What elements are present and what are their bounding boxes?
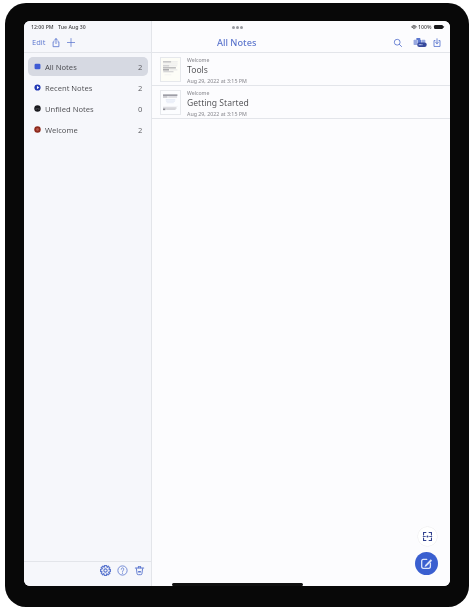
- button[interactable]: Scan document: [417, 526, 438, 547]
- button[interactable]: Search: [393, 38, 403, 48]
- button[interactable]: New folder: [66, 37, 76, 48]
- button[interactable]: Edit: [31, 37, 47, 47]
- staticText: 100%: [418, 23, 432, 30]
- button[interactable]: Share: [51, 37, 61, 48]
- button[interactable]: Welcome: [152, 53, 450, 85]
- button[interactable]: New note: [415, 552, 438, 575]
- staticText: Aug 29, 2022 at 3:15 PM: [187, 110, 247, 117]
- button[interactable]: Recent Notes: [28, 78, 148, 97]
- staticText: Welcome: [187, 56, 210, 63]
- button[interactable]: Unfiled Notes: [28, 99, 148, 118]
- staticText: Getting Started: [187, 97, 249, 109]
- staticText: Unfiled Notes: [45, 104, 94, 114]
- button[interactable]: Welcome: [152, 86, 450, 118]
- staticText: Welcome: [187, 89, 210, 96]
- button[interactable]: Settings: [100, 565, 111, 576]
- button[interactable]: View options: [413, 37, 427, 48]
- button[interactable]: Import: [432, 37, 442, 48]
- staticText: Tools: [187, 64, 208, 76]
- staticText: 2: [138, 83, 143, 93]
- button[interactable]: All Notes: [28, 57, 148, 76]
- staticText: All Notes: [45, 62, 77, 72]
- button[interactable]: Help: [117, 565, 128, 576]
- staticText: All Notes: [217, 36, 257, 49]
- staticText: 2: [138, 125, 143, 135]
- staticText: 12:00 PM: [31, 23, 54, 30]
- staticText: 0: [138, 104, 143, 114]
- staticText: 2: [138, 62, 143, 72]
- staticText: Welcome: [45, 125, 78, 135]
- staticText: Aug 29, 2022 at 3:15 PM: [187, 77, 247, 84]
- staticText: Edit: [32, 37, 46, 47]
- staticText: Recent Notes: [45, 83, 93, 93]
- button[interactable]: Welcome: [28, 120, 148, 139]
- button[interactable]: Trash: [134, 565, 145, 576]
- staticText: Tue Aug 30: [58, 23, 86, 30]
